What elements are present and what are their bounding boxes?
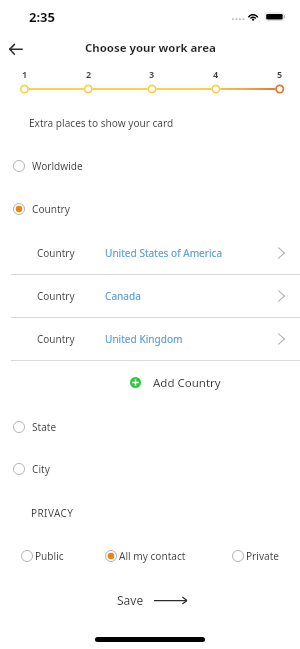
staticText: 5 (277, 68, 283, 80)
staticText: City (32, 462, 50, 476)
button[interactable]: City (0, 457, 300, 481)
staticText: Public (35, 549, 64, 563)
staticText: Country (37, 332, 75, 346)
staticText: 4 (213, 68, 219, 80)
button[interactable]: Back (0, 35, 32, 63)
staticText: Save (117, 592, 144, 608)
button[interactable]: All my contact (101, 542, 186, 569)
button[interactable]: Country (0, 231, 300, 274)
staticText: Worldwide (32, 159, 83, 173)
staticText: 2 (86, 68, 92, 80)
staticText: 3 (149, 68, 155, 80)
button[interactable]: Country (0, 274, 300, 317)
button[interactable]: Country (0, 197, 300, 221)
staticText: State (32, 420, 57, 434)
button[interactable]: Private (228, 542, 280, 569)
button[interactable]: Add Country (130, 371, 221, 394)
staticText: Private (246, 549, 280, 563)
staticText: United Kingdom (105, 332, 183, 346)
button[interactable]: Country (0, 317, 300, 360)
button[interactable]: Public (17, 542, 64, 569)
staticText: Choose your work area (85, 40, 216, 56)
staticText: United States of America (105, 246, 223, 260)
staticText: 1 (22, 68, 28, 80)
staticText: PRIVACY (31, 506, 74, 520)
button[interactable]: Save (117, 592, 187, 608)
staticText: All my contact (119, 549, 186, 563)
button[interactable]: Worldwide (0, 154, 300, 178)
staticText: 2:35 (29, 8, 55, 26)
staticText: Add Country (153, 375, 221, 391)
staticText: Country (32, 202, 70, 216)
button[interactable]: State (0, 415, 300, 439)
staticText: Country (37, 289, 75, 303)
staticText: Extra places to show your card (29, 116, 174, 130)
staticText: Country (37, 246, 75, 260)
staticText: Canada (105, 289, 141, 303)
